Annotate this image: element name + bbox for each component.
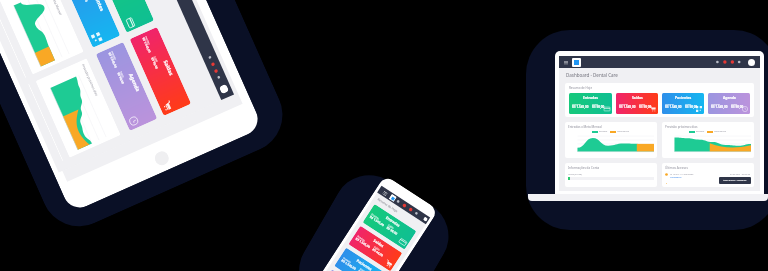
staticText: Pacientes xyxy=(675,95,692,100)
staticText: Previsão próximos dias xyxy=(81,63,99,97)
staticText: R$ 1.545,00 xyxy=(665,105,682,109)
staticText: Saldo xyxy=(120,71,126,78)
staticText: Saldo xyxy=(359,267,367,271)
staticText: Meta Mensal xyxy=(714,130,727,133)
button[interactable]: Pacientes xyxy=(662,93,704,114)
staticText: R$ 98,00 xyxy=(371,247,385,258)
staticText: Agenda xyxy=(723,95,736,100)
staticText: R$ 1.545,00 xyxy=(572,105,589,109)
staticText: Limite (2.8 MB) xyxy=(568,173,582,176)
staticText: R$ 98,00 xyxy=(150,57,159,70)
staticText: Últimos Acessos xyxy=(665,166,688,170)
staticText: R$ 98,00 xyxy=(386,226,399,236)
staticText: R$ 98,00 xyxy=(357,269,370,271)
staticText: Pacientes xyxy=(89,0,106,13)
other: Menu xyxy=(564,61,568,64)
button[interactable]: Agenda xyxy=(96,42,157,131)
staticText: Saídas xyxy=(162,59,175,77)
staticText: R$ 98,00 xyxy=(685,105,698,109)
button[interactable]: Saídas xyxy=(616,93,658,114)
staticText: Entradas xyxy=(696,130,705,133)
staticText: Saldo xyxy=(685,102,692,105)
staticText: Saldo xyxy=(731,102,738,105)
staticText: R$ 1.545,00 xyxy=(711,105,728,109)
button[interactable]: Entradas xyxy=(362,204,416,250)
staticText: Entradas xyxy=(583,95,598,100)
staticText: Saldo xyxy=(374,245,381,251)
staticText: R$ 1.545,00 xyxy=(341,258,357,271)
staticText: Agenda xyxy=(127,72,141,93)
staticText: Entradas x Meta Mensal xyxy=(568,125,602,129)
staticText: R$ 98,00 xyxy=(80,0,89,3)
staticText: Saldo xyxy=(388,223,395,229)
button[interactable]: Agenda xyxy=(708,93,750,114)
button[interactable]: Entradas xyxy=(569,93,612,114)
staticText: IP 10.0.0.1 / Localizado xyxy=(670,173,694,176)
staticText: Previsto xyxy=(111,50,117,60)
staticText: Previsão próximos dias xyxy=(665,125,698,129)
staticText: Entradas xyxy=(599,130,608,133)
staticText: Dashboard - Dental Care xyxy=(566,72,618,78)
button[interactable]: Mais acesso - Detalhes xyxy=(719,177,751,184)
button[interactable]: Saídas xyxy=(130,27,191,116)
staticText: 07-04-2021 - 08:44:55 xyxy=(730,183,751,184)
staticText: Previsto xyxy=(572,102,581,105)
staticText: Pacientes xyxy=(356,258,374,271)
staticText: R$ 98,00 xyxy=(731,105,744,109)
staticText: Previsto xyxy=(711,102,720,105)
staticText: Previsto xyxy=(371,212,380,220)
staticText: Saídas xyxy=(632,95,643,100)
staticText: Saldo xyxy=(639,102,646,105)
button[interactable]: Agenda xyxy=(320,269,374,271)
staticText: Previsto xyxy=(665,102,674,105)
staticText: Entradas x Meta Mensal xyxy=(44,0,63,16)
staticText: R$ 1.545,00 xyxy=(107,52,118,69)
other: Menu xyxy=(382,191,387,196)
staticText: Mais acesso - Detalhes xyxy=(723,179,747,182)
staticText: Saldo xyxy=(592,102,599,105)
staticText: Localizar IP xyxy=(670,176,682,179)
staticText: R$ 98,00 xyxy=(116,72,125,85)
staticText: Resumo de Hoje xyxy=(569,86,593,90)
staticText: R$ 1.545,00 xyxy=(369,215,385,227)
staticText: R$ 98,00 xyxy=(639,105,652,109)
button[interactable]: Saídas xyxy=(348,226,402,271)
button[interactable]: Pacientes xyxy=(59,0,120,48)
staticText: R$ 1.545,00 xyxy=(355,237,371,249)
button[interactable]: Pacientes xyxy=(334,248,388,271)
staticText: R$ 1.545,00 xyxy=(619,105,636,109)
staticText: Meta Mensal xyxy=(617,130,630,133)
staticText: Previsto xyxy=(145,35,151,45)
staticText: R$ 1.545,00 xyxy=(141,37,152,54)
staticText: Informações da Conta xyxy=(568,166,600,170)
staticText: Entradas xyxy=(385,215,401,228)
staticText: Previsto xyxy=(357,234,366,241)
staticText: Previsto xyxy=(619,102,628,105)
staticText: 07-04-2021 - 08:44:55 xyxy=(730,173,751,176)
staticText: Previsto xyxy=(343,256,352,263)
button[interactable]: Entradas xyxy=(93,0,154,33)
staticText: R$ 98,00 xyxy=(592,105,605,109)
staticText: Saldo xyxy=(154,56,159,63)
staticText: Resumo de Hoje xyxy=(377,197,399,214)
staticText: Saídas xyxy=(372,238,385,248)
